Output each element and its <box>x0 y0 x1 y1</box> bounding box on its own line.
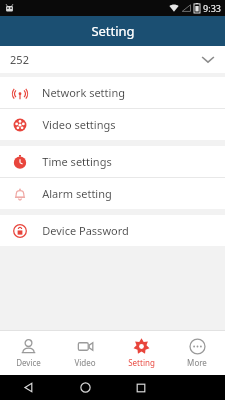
staticText: 9:33 <box>203 2 221 14</box>
staticText: Time settings <box>42 154 112 169</box>
button[interactable]: Setting <box>113 331 169 375</box>
button[interactable]: Video <box>57 331 113 375</box>
button[interactable]: Device Password <box>0 215 225 246</box>
button[interactable]: Device <box>0 331 57 375</box>
staticText: Device <box>16 357 41 368</box>
button[interactable]: Network setting <box>0 77 225 108</box>
staticText: More <box>187 357 207 368</box>
staticText: 252 <box>10 52 29 67</box>
button[interactable]: Video settings <box>0 109 225 140</box>
button[interactable]: Alarm setting <box>0 178 225 209</box>
button[interactable]: Back <box>0 375 57 400</box>
button[interactable]: 252 <box>0 46 225 73</box>
staticText: Alarm setting <box>42 186 112 201</box>
staticText: Setting <box>128 357 155 368</box>
staticText: Device Password <box>42 223 129 238</box>
staticText: Video settings <box>42 117 116 132</box>
button[interactable]: Time settings <box>0 146 225 177</box>
button[interactable]: Recents <box>113 375 169 400</box>
staticText: Setting <box>91 22 135 40</box>
staticText: Video <box>74 357 96 368</box>
button[interactable]: More <box>169 331 225 375</box>
button[interactable]: Home <box>57 375 113 400</box>
staticText: Network setting <box>42 85 125 100</box>
